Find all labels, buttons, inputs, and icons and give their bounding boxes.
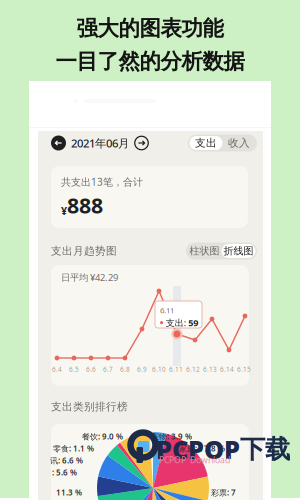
staticText: 讯: 6.6 % — [50, 455, 83, 466]
staticText: 支出月趋势图 — [51, 244, 117, 258]
button[interactable]: 下个月 — [134, 135, 149, 150]
staticText: 6.14 — [220, 365, 234, 374]
staticText: PCPOP Download — [159, 454, 230, 466]
staticText: 6.11 — [169, 365, 183, 374]
staticText: 支出: — [166, 316, 186, 329]
staticText: 折线图 — [223, 245, 253, 257]
staticText: 6.10 — [152, 365, 166, 374]
button[interactable]: 折线图 — [221, 244, 255, 258]
staticText: 家庭: 17.8 % — [179, 443, 225, 454]
button[interactable]: 柱状图 — [187, 244, 221, 258]
staticText: ¥ — [61, 204, 67, 218]
staticText: 6.11 — [160, 305, 174, 315]
staticText: 收入 — [228, 136, 250, 150]
staticText: 6.12 — [186, 365, 200, 374]
staticText: 6.15 — [237, 365, 251, 374]
staticText: 宠物: 3.9 % — [151, 431, 192, 442]
button[interactable]: 上个月 — [51, 135, 66, 150]
staticText: PCPOP — [156, 432, 240, 466]
staticText: 彩票: 7 — [211, 487, 236, 498]
staticText: 6.7 — [103, 365, 113, 374]
button[interactable]: 收入 — [222, 136, 255, 150]
staticText: 888 — [67, 191, 103, 220]
staticText: 下载 — [240, 433, 290, 465]
staticText: 6.4 — [52, 365, 62, 374]
staticText: 59 — [188, 316, 198, 329]
staticText: 柱状图 — [189, 245, 219, 257]
staticText: 6.13 — [203, 365, 217, 374]
staticText: 零食: 1.1 % — [53, 443, 94, 454]
staticText: 2021年06月 — [71, 135, 129, 151]
staticText: 支出类别排行榜 — [51, 400, 128, 413]
staticText: 6.8 — [120, 365, 130, 374]
staticText: 6.9 — [137, 365, 147, 374]
staticText: : 5.6 % — [52, 467, 77, 478]
staticText: 6.6 — [86, 365, 96, 374]
staticText: 6.5 — [69, 365, 79, 374]
button[interactable]: 支出 — [189, 136, 222, 150]
staticText: 餐饮: 9.0 % — [82, 431, 123, 442]
staticText: 日平均 ¥42.29 — [61, 271, 118, 284]
staticText: 共支出13笔，合计 — [61, 175, 143, 189]
staticText: 11.3 % — [56, 487, 82, 498]
staticText: 强大的图表功能 — [76, 15, 223, 42]
staticText: 支出 — [195, 136, 217, 150]
staticText: 一目了然的分析数据 — [55, 48, 244, 75]
